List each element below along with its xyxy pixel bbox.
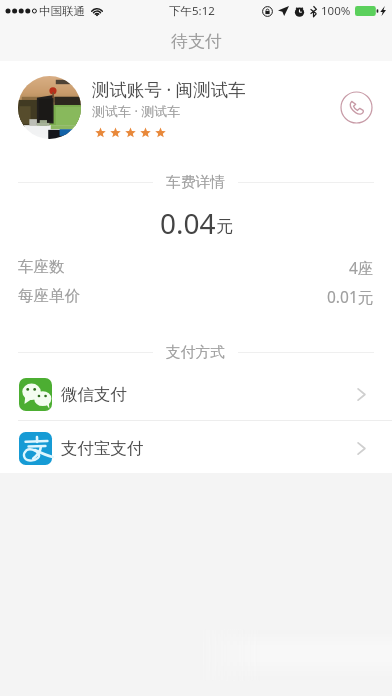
staticText: 4座 <box>349 257 374 277</box>
button[interactable]: Call driver <box>339 90 374 125</box>
button[interactable]: 微信支付 <box>0 368 392 420</box>
staticText: 测试车 · 测试车 <box>92 102 181 120</box>
staticText: 每座单价 <box>18 286 80 306</box>
button[interactable]: 支付宝支付 <box>0 422 392 474</box>
staticText: 车费详情 <box>166 173 225 192</box>
staticText: 车座数 <box>18 257 65 277</box>
staticText: 下午5:12 <box>169 3 215 19</box>
staticText: 支付方式 <box>166 343 225 362</box>
staticText: 支付宝支付 <box>61 438 144 459</box>
staticText: 微信支付 <box>61 384 127 405</box>
staticText: 0.01元 <box>327 286 374 306</box>
staticText: 100% <box>321 3 351 19</box>
staticText: 0.04 <box>160 204 216 238</box>
staticText: 待支付 <box>171 31 222 52</box>
staticText: 测试账号 · 闽测试车 <box>92 77 246 101</box>
staticText: 元 <box>216 216 233 237</box>
button[interactable] <box>0 61 330 151</box>
staticText: 中国联通 <box>39 4 85 18</box>
